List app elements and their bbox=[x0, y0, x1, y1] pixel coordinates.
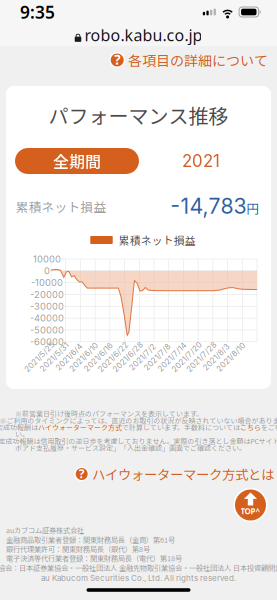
staticText: 0 bbox=[44, 265, 50, 276]
staticText: ボアド支払履歴・サービス設定」「入出金確認」画面でご確認ください。 bbox=[15, 443, 246, 453]
button[interactable]: 2021 bbox=[139, 148, 263, 174]
staticText: 2021/6/4 bbox=[52, 352, 86, 362]
staticText: 2021/8/10 bbox=[212, 352, 249, 362]
staticText: ※予定成功報酬は信用取引の逆日歩を考慮しておりません。実際の引き落とし金額はPC… bbox=[0, 436, 277, 446]
button[interactable]: Back to top bbox=[232, 487, 268, 523]
staticText: 円 bbox=[246, 199, 259, 217]
staticText: robo.kabu.co.jp bbox=[84, 24, 202, 46]
staticText: ※前営業日引け後時点のパフォーマンスを表示しています。 bbox=[15, 408, 203, 418]
staticText: -20000 bbox=[30, 289, 64, 300]
staticText: 2021/8/3 bbox=[199, 352, 233, 362]
staticText: 累積ネット損益 bbox=[15, 197, 106, 216]
staticText: ハイウォーターマーク方式 bbox=[38, 422, 122, 432]
staticText: au Kabucom Securities Co., Ltd. All righ… bbox=[41, 573, 236, 583]
staticText: ※ご利用のタイミングによっては、直近のお取引の状況が反映されていない場合がありま… bbox=[0, 415, 277, 425]
staticText: auカブコム証券株式会社 bbox=[6, 525, 84, 535]
staticText: 2021/7/20 bbox=[167, 352, 206, 362]
staticText: ? bbox=[79, 466, 85, 482]
staticText: 2021/7/14 bbox=[153, 352, 190, 362]
staticText: -60000 bbox=[30, 336, 64, 347]
staticText: 2021 bbox=[182, 151, 220, 171]
staticText: 加入協会：日本証券業協会・一般社団法人 金融先物取引業協会・一般社団法人 日本投… bbox=[0, 562, 277, 573]
staticText: 2021/7/8 bbox=[140, 352, 174, 362]
staticText: 10000 bbox=[33, 253, 61, 265]
staticText: で計算しています。手数料については bbox=[122, 422, 240, 432]
staticText: 各項目の詳細について bbox=[128, 50, 268, 70]
staticText: -50000 bbox=[30, 324, 64, 336]
staticText: 全期間 bbox=[53, 149, 101, 173]
staticText: ※予定成功報酬は bbox=[0, 422, 38, 432]
staticText: 2021/7/2 bbox=[125, 352, 159, 362]
staticText: 電子決済等代行業者登録：関東財務局長（電代）第18号 bbox=[6, 553, 182, 563]
staticText: 2021/5/31 bbox=[36, 352, 73, 362]
staticText: ハイウォーターマーク方式とは bbox=[92, 464, 274, 484]
staticText: -10000 bbox=[31, 277, 63, 288]
staticText: 銀行代理業許可：関東財務局長（銀代）第8号 bbox=[6, 544, 150, 554]
staticText: ? bbox=[114, 51, 120, 68]
staticText: 累積ネット損益 bbox=[119, 232, 196, 248]
staticText: 9:35 bbox=[20, 0, 55, 23]
staticText: 2021/6/28 bbox=[108, 352, 147, 362]
staticText: -30000 bbox=[30, 301, 64, 312]
staticText: 2021/5/25 bbox=[20, 352, 59, 362]
staticText: をご参照くださ bbox=[261, 422, 277, 432]
button[interactable]: robo.kabu.co.jp bbox=[0, 24, 277, 46]
staticText: 2021/6/22 bbox=[94, 352, 133, 362]
button[interactable]: ? bbox=[74, 465, 274, 483]
staticText: 2021/7/28 bbox=[182, 352, 221, 362]
staticText: -14,783 bbox=[170, 193, 246, 219]
staticText: 金融商品取引業者登録：関東財務局長（金商）第61号 bbox=[6, 534, 175, 545]
button[interactable]: 全期間 bbox=[15, 148, 139, 174]
staticText: 2021/6/16 bbox=[80, 352, 117, 362]
staticText: い。 bbox=[15, 429, 29, 439]
staticText: こちら bbox=[240, 422, 261, 432]
staticText: パフォーマンス推移 bbox=[48, 100, 228, 129]
staticText: 2021/6/10 bbox=[65, 352, 102, 362]
staticText: TOP^ bbox=[240, 506, 260, 516]
button[interactable]: ? bbox=[109, 50, 268, 70]
staticText: -40000 bbox=[30, 312, 64, 324]
